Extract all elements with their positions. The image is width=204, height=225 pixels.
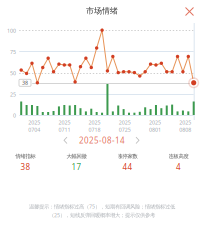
staticText: 38 <box>20 162 30 172</box>
staticText: 连板高度 <box>168 153 188 160</box>
button[interactable]: 下一日 <box>135 136 141 144</box>
staticText: （25），短线反弹回暖概率增大；提示仅供参考 <box>49 212 155 219</box>
staticText: 温馨提示：情绪指标过高（75），短期有回调风险；情绪指标过低 <box>29 203 175 210</box>
staticText: 50 <box>10 70 16 77</box>
staticText: 38 <box>22 79 28 86</box>
staticText: 2025 <box>89 119 101 126</box>
staticText: 100 <box>7 27 16 34</box>
staticText: 0801 <box>149 126 161 133</box>
staticText: 0725 <box>119 126 131 133</box>
staticText: 0718 <box>89 126 101 133</box>
staticText: 2025-08-14 <box>79 135 125 146</box>
staticText: 25 <box>10 91 16 98</box>
staticText: 44 <box>122 162 132 172</box>
staticText: 2025 <box>28 119 40 126</box>
staticText: 2025 <box>119 119 131 126</box>
staticText: 0808 <box>179 126 191 133</box>
staticText: 情绪指标 <box>15 153 35 160</box>
staticText: 75 <box>10 48 16 55</box>
staticText: 市场情绪 <box>86 6 118 16</box>
staticText: 2025 <box>149 119 161 126</box>
staticText: 大幅回撤 <box>66 153 86 160</box>
staticText: 17 <box>71 162 81 172</box>
staticText: 4 <box>176 162 181 172</box>
staticText: 0704 <box>28 126 40 133</box>
staticText: 0 <box>13 112 16 119</box>
button[interactable]: 关闭 <box>183 5 196 18</box>
staticText: 2025 <box>58 119 70 126</box>
staticText: 0711 <box>58 126 70 133</box>
staticText: 涨停家数 <box>117 153 137 160</box>
staticText: 2025 <box>179 119 191 126</box>
button[interactable]: 上一日 <box>63 136 69 144</box>
